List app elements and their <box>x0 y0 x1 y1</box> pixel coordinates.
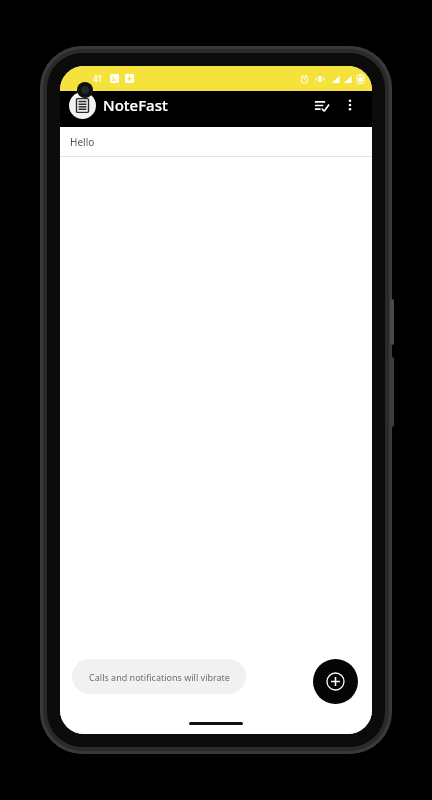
button[interactable]: Add note <box>313 659 358 704</box>
button[interactable]: Hello <box>60 127 372 156</box>
staticText: NoteFast <box>103 95 168 115</box>
staticText: 41 <box>93 73 103 84</box>
staticText: Hello <box>70 135 95 149</box>
button[interactable]: More options <box>337 92 363 118</box>
staticText: Calls and notifications will vibrate <box>89 671 230 683</box>
button[interactable]: App icon <box>69 92 96 119</box>
button[interactable]: Calls and notifications will vibrate <box>72 659 246 694</box>
button[interactable]: Select notes <box>307 91 335 119</box>
